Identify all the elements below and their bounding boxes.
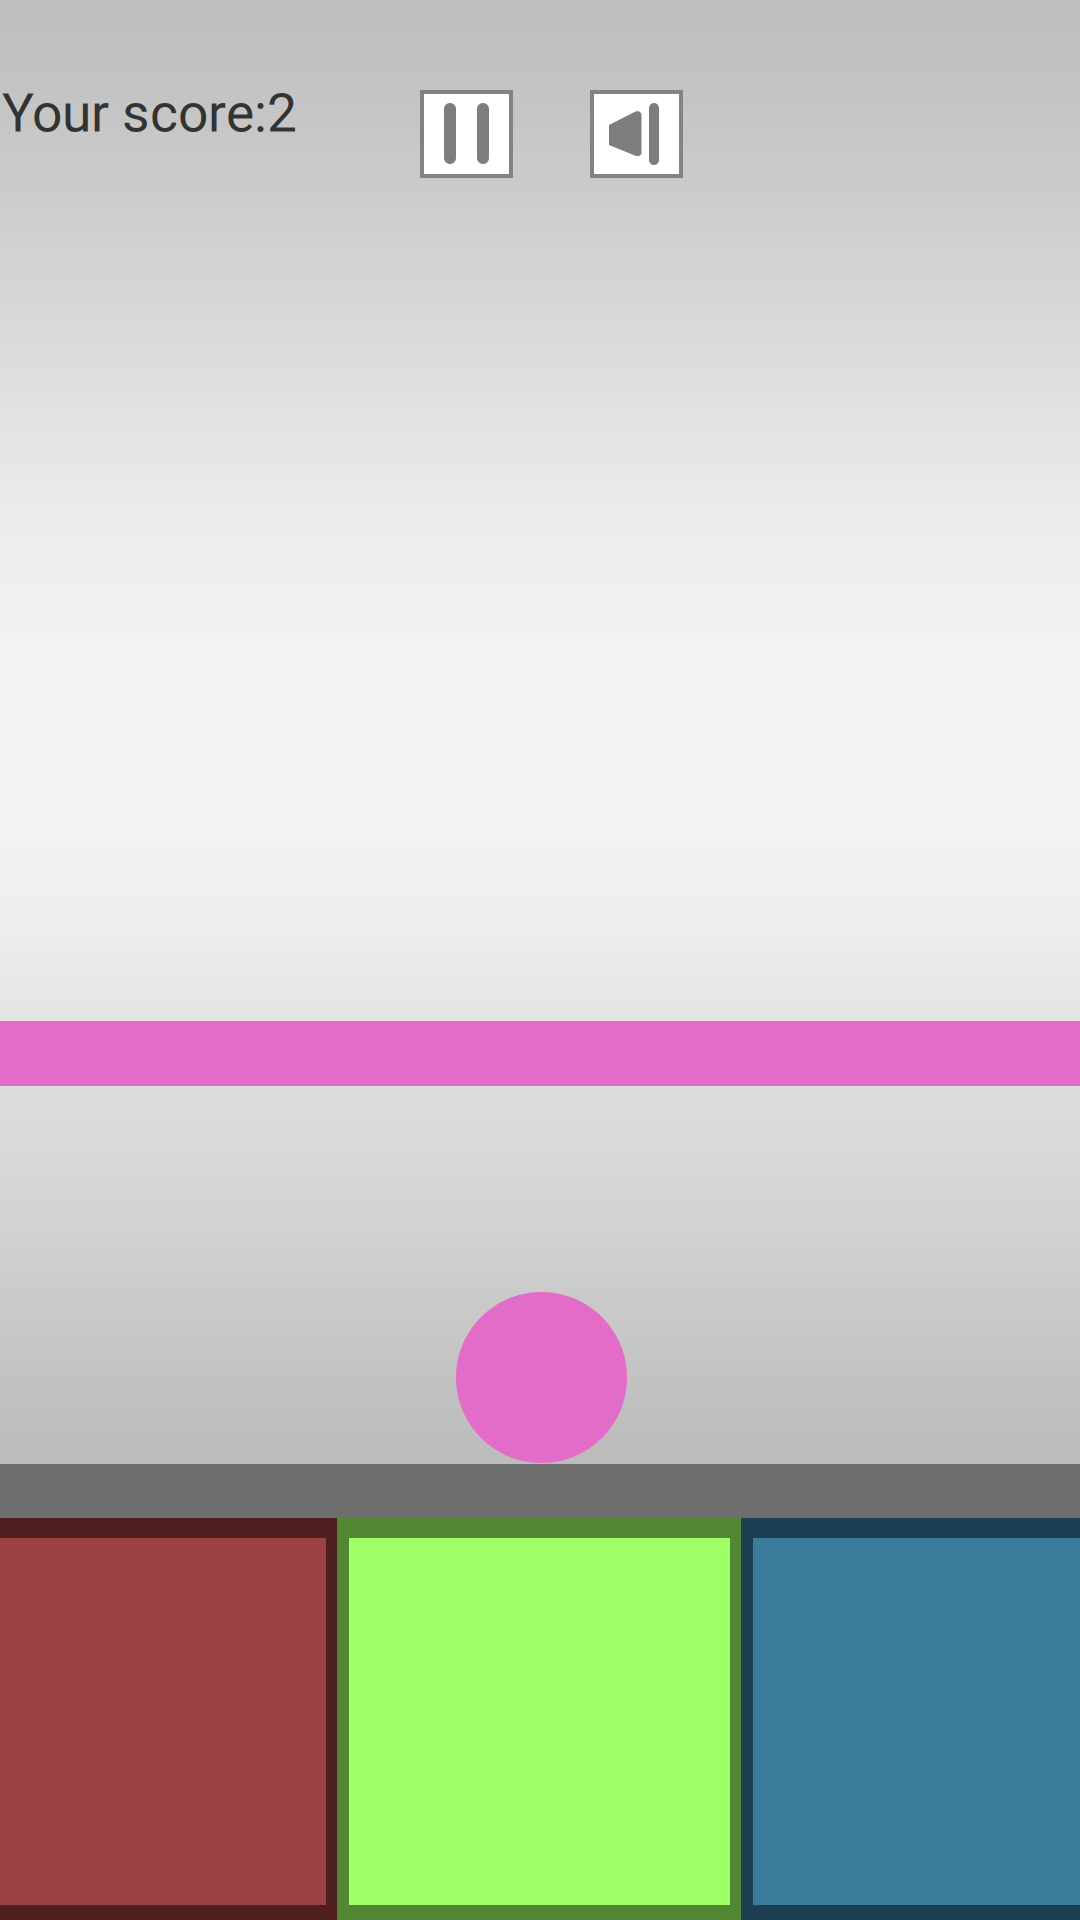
staticText: Your score:2: [2, 82, 297, 144]
button[interactable]: Pause: [420, 90, 513, 178]
button[interactable]: Sound: [590, 90, 683, 178]
